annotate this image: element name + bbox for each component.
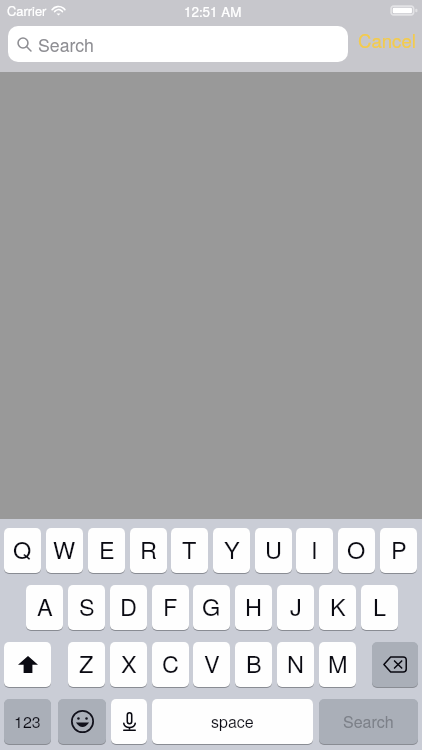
- staticText: X: [121, 646, 137, 680]
- button[interactable]: E: [88, 528, 125, 573]
- staticText: 123: [14, 710, 41, 733]
- button[interactable]: G: [193, 585, 230, 630]
- button[interactable]: Search: [8, 26, 348, 62]
- button[interactable]: Y: [213, 528, 250, 573]
- staticText: U: [265, 532, 282, 566]
- staticText: Y: [224, 532, 240, 566]
- button[interactable]: U: [255, 528, 292, 573]
- button[interactable]: F: [152, 585, 189, 630]
- button[interactable]: Shift: [4, 642, 51, 687]
- button[interactable]: Cancel: [347, 20, 422, 72]
- staticText: V: [204, 646, 220, 680]
- staticText: F: [163, 589, 178, 623]
- button[interactable]: J: [277, 585, 314, 630]
- staticText: P: [391, 532, 407, 566]
- staticText: R: [140, 532, 157, 566]
- staticText: I: [311, 532, 318, 566]
- button[interactable]: R: [130, 528, 167, 573]
- button[interactable]: Backspace: [372, 642, 418, 687]
- button[interactable]: W: [46, 528, 83, 573]
- button[interactable]: 123: [4, 699, 51, 744]
- staticText: O: [347, 532, 366, 566]
- staticText: K: [330, 589, 346, 623]
- button[interactable]: Dictation: [111, 699, 147, 744]
- button[interactable]: V: [193, 642, 230, 687]
- staticText: T: [182, 532, 197, 566]
- staticText: N: [287, 646, 304, 680]
- button[interactable]: space: [152, 699, 313, 744]
- staticText: H: [245, 589, 262, 623]
- button[interactable]: Search: [319, 699, 418, 744]
- staticText: Cancel: [358, 27, 416, 54]
- staticText: Carrier: [7, 1, 47, 19]
- button[interactable]: P: [380, 528, 417, 573]
- staticText: Search: [38, 32, 94, 57]
- staticText: C: [162, 646, 179, 680]
- button[interactable]: K: [319, 585, 356, 630]
- staticText: W: [53, 532, 76, 566]
- button[interactable]: I: [296, 528, 333, 573]
- button[interactable]: H: [235, 585, 272, 630]
- button[interactable]: S: [68, 585, 105, 630]
- staticText: J: [290, 589, 302, 623]
- staticText: L: [373, 589, 387, 623]
- button[interactable]: D: [110, 585, 147, 630]
- button[interactable]: T: [171, 528, 208, 573]
- staticText: 12:51 AM: [184, 2, 242, 21]
- button[interactable]: M: [319, 642, 356, 687]
- button[interactable]: O: [338, 528, 375, 573]
- button[interactable]: X: [110, 642, 147, 687]
- staticText: Q: [13, 532, 32, 566]
- button[interactable]: C: [152, 642, 189, 687]
- staticText: Z: [79, 646, 94, 680]
- button[interactable]: B: [235, 642, 272, 687]
- button[interactable]: Z: [68, 642, 105, 687]
- button[interactable]: Q: [4, 528, 41, 573]
- staticText: G: [202, 589, 221, 623]
- staticText: A: [37, 589, 53, 623]
- button[interactable]: L: [361, 585, 398, 630]
- staticText: E: [99, 532, 115, 566]
- staticText: M: [328, 646, 348, 680]
- staticText: D: [120, 589, 137, 623]
- button[interactable]: A: [26, 585, 63, 630]
- button[interactable]: N: [277, 642, 314, 687]
- staticText: Search: [343, 710, 394, 733]
- staticText: S: [79, 589, 95, 623]
- button[interactable]: Emoji keyboard: [58, 699, 106, 744]
- staticText: B: [246, 646, 262, 680]
- staticText: space: [211, 710, 254, 733]
